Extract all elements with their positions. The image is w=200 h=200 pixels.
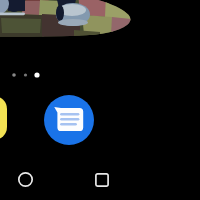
button[interactable]: Messages xyxy=(44,95,94,145)
button[interactable]: Home xyxy=(18,172,33,187)
button[interactable]: Recent apps xyxy=(95,173,109,187)
button[interactable]: Notes app xyxy=(0,96,7,140)
